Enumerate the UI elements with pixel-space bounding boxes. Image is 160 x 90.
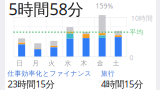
staticText: 23時間15分 — [7, 78, 54, 90]
staticText: 旅行 — [101, 69, 115, 78]
staticText: 木 — [80, 59, 87, 67]
staticText: 仕事効率化とファイナンス — [7, 69, 91, 78]
staticText: 10時間 — [131, 14, 153, 23]
staticText: 159% — [95, 2, 113, 10]
staticText: 4時間15分 — [101, 78, 143, 90]
staticText: 金 — [97, 59, 104, 67]
staticText: 0 — [129, 53, 133, 62]
staticText: 土 — [113, 59, 120, 67]
staticText: 水 — [64, 59, 71, 67]
staticText: 日 — [16, 59, 23, 67]
staticText: 火 — [48, 59, 55, 67]
staticText: 5時間58分 — [8, 0, 83, 20]
staticText: 月 — [32, 59, 39, 67]
staticText: 平均 — [129, 28, 143, 36]
